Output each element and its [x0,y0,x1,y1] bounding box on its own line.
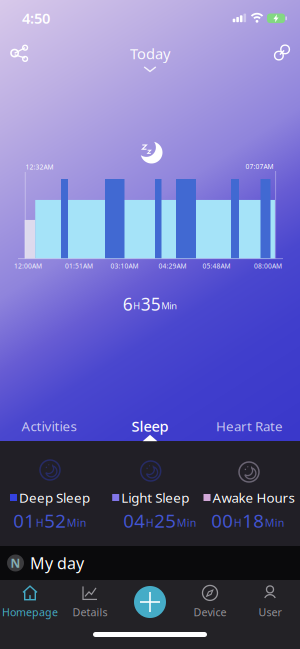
button[interactable]: Link device [271,41,293,63]
staticText: H [234,515,242,530]
staticText: 00 [211,508,233,533]
staticText: Activities [21,417,76,435]
staticText: H [36,515,44,530]
staticText: My day [30,552,84,574]
staticText: User [258,605,281,619]
button[interactable]: User [238,584,300,620]
staticText: Min [265,515,285,530]
staticText: 01 [13,508,35,533]
button[interactable]: Heart Rate [208,413,291,439]
staticText: Sleep [131,416,168,436]
staticText: H [146,515,154,530]
button[interactable]: Add [134,586,166,618]
button[interactable]: Details [58,584,122,620]
button[interactable]: Activities [13,413,84,439]
staticText: 25 [154,508,176,533]
staticText: H [133,300,140,312]
staticText: Details [72,605,107,619]
button[interactable]: Device [178,584,242,620]
button[interactable]: Today [130,44,170,72]
staticText: 04:29AM [158,262,186,270]
staticText: 12:32AM [25,163,53,171]
staticText: 08:00AM [254,262,282,270]
staticText: 03:10AM [110,262,138,270]
button[interactable]: Homepage [0,584,62,620]
staticText: 12:00AM [14,262,42,270]
staticText: Min [161,300,177,312]
staticText: Light Sleep [121,489,189,506]
staticText: N [10,555,20,571]
button[interactable]: Share [5,41,31,67]
staticText: Heart Rate [216,417,283,435]
staticText: Deep Sleep [19,489,90,506]
staticText: Today [130,44,170,63]
button[interactable]: N [0,546,300,580]
staticText: Device [193,605,226,619]
button[interactable]: Sleep [123,412,176,440]
staticText: 07:07AM [245,162,273,171]
staticText: 18 [242,508,264,533]
staticText: Min [177,515,197,530]
staticText: Min [67,515,87,530]
staticText: 05:48AM [202,262,230,270]
staticText: 52 [44,508,66,533]
staticText: Awake Hours [212,489,294,506]
staticText: 4:50 [22,8,50,28]
staticText: 6 [123,292,133,315]
staticText: 01:51AM [65,262,93,270]
staticText: Homepage [2,605,58,619]
staticText: 35 [141,292,161,315]
staticText: 04 [123,508,145,533]
